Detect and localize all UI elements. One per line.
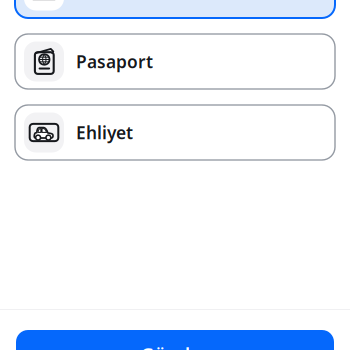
button[interactable]: Kimlik	[15, 0, 335, 18]
staticText: Ehliyet	[76, 121, 133, 144]
staticText: Gönder	[140, 342, 209, 350]
staticText: Pasaport	[76, 50, 153, 73]
button[interactable]: Pasaport	[15, 34, 335, 89]
button[interactable]: Ehliyet	[15, 105, 335, 160]
button[interactable]: Gönder	[16, 330, 334, 350]
